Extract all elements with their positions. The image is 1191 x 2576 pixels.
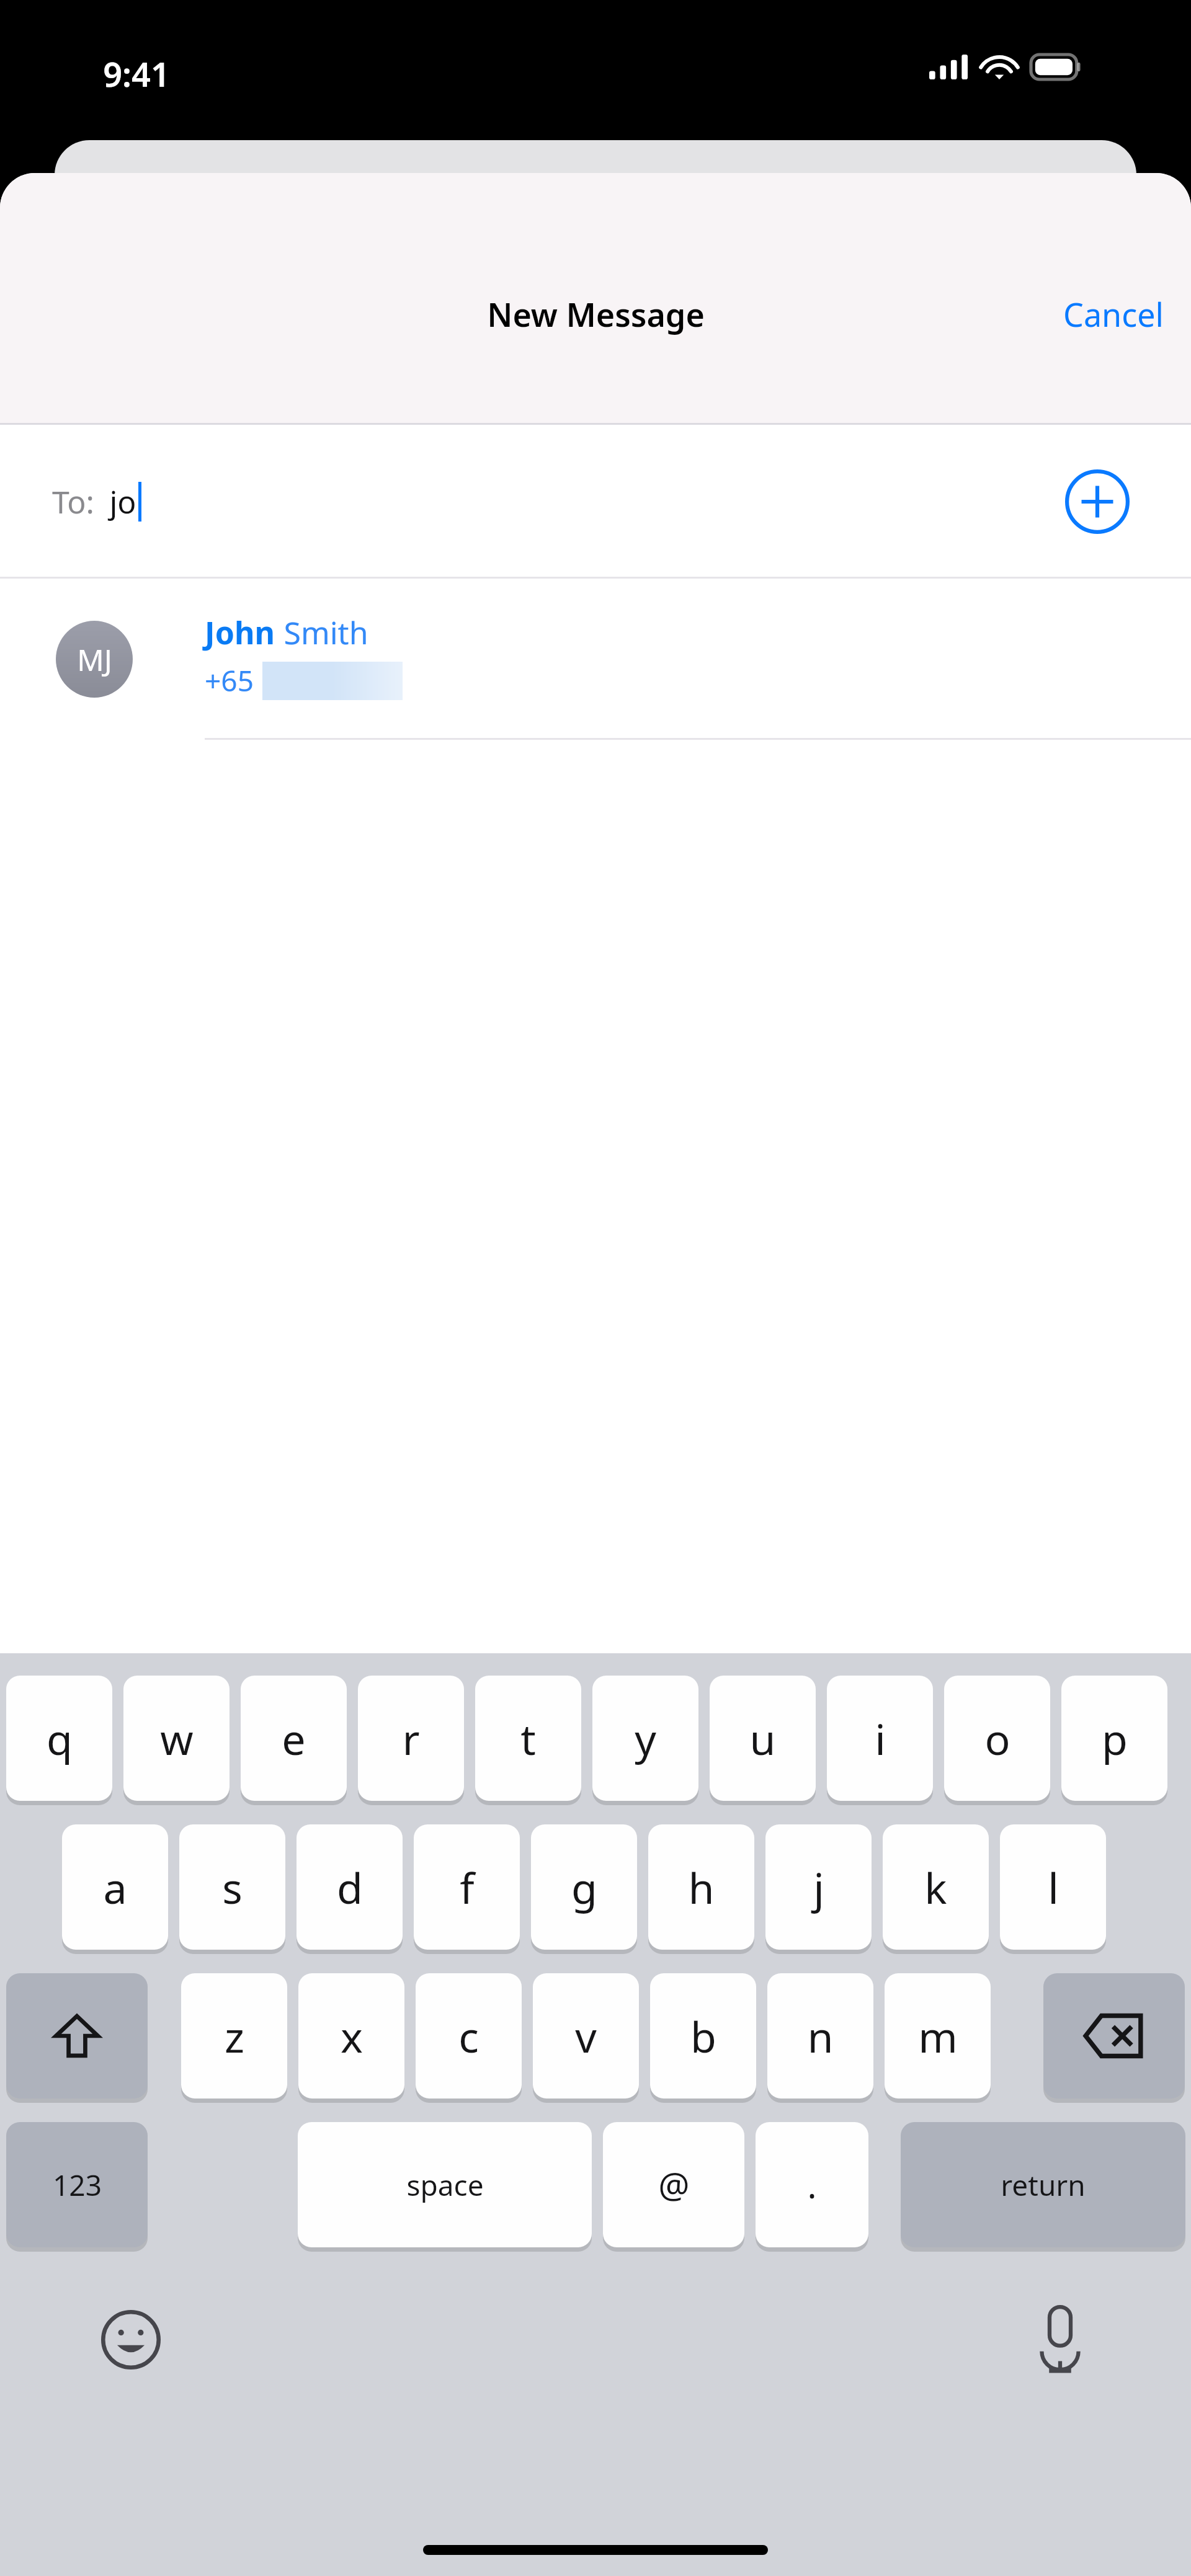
staticText: s xyxy=(222,1859,243,1916)
staticText: b xyxy=(690,2007,716,2065)
button[interactable]: t xyxy=(475,1676,581,1801)
staticText: New Message xyxy=(487,292,705,336)
staticText: o xyxy=(984,1710,1010,1767)
staticText: p xyxy=(1102,1710,1128,1767)
staticText: jo xyxy=(109,481,136,523)
button[interactable]: s xyxy=(179,1824,285,1950)
button[interactable]: h xyxy=(648,1824,754,1950)
button[interactable]: u xyxy=(710,1676,816,1801)
staticText: . xyxy=(807,2161,817,2208)
staticText: y xyxy=(635,1710,656,1767)
button[interactable]: MJ xyxy=(0,579,1191,740)
button[interactable]: Cancel xyxy=(1036,275,1191,353)
button[interactable]: o xyxy=(944,1676,1050,1801)
staticText: u xyxy=(749,1710,776,1767)
staticText: space xyxy=(406,2165,484,2205)
staticText: return xyxy=(1001,2165,1086,2205)
button[interactable]: p xyxy=(1061,1676,1167,1801)
button[interactable]: j xyxy=(765,1824,872,1950)
staticText: h xyxy=(688,1859,715,1916)
button[interactable]: v xyxy=(533,1973,639,2099)
staticText: Smith xyxy=(283,611,368,654)
staticText: d xyxy=(337,1859,363,1916)
button[interactable]: c xyxy=(416,1973,522,2099)
button[interactable]: space xyxy=(298,2122,592,2247)
button[interactable]: i xyxy=(827,1676,933,1801)
staticText: c xyxy=(458,2007,479,2065)
staticText: t xyxy=(520,1710,536,1767)
staticText: x xyxy=(341,2007,363,2065)
staticText: MJ xyxy=(77,639,112,680)
staticText: l xyxy=(1048,1859,1059,1916)
staticText: g xyxy=(571,1859,597,1916)
button[interactable]: Emoji keyboard xyxy=(91,2299,171,2380)
button[interactable]: b xyxy=(650,1973,756,2099)
button[interactable]: d xyxy=(297,1824,403,1950)
button[interactable]: z xyxy=(181,1973,287,2099)
button[interactable]: Backspace xyxy=(1043,1973,1185,2099)
staticText: m xyxy=(918,2007,958,2065)
button[interactable]: f xyxy=(414,1824,520,1950)
staticText: @ xyxy=(658,2161,690,2208)
button[interactable]: e xyxy=(241,1676,347,1801)
staticText: r xyxy=(402,1710,420,1767)
staticText: w xyxy=(160,1710,194,1767)
staticText: +65 xyxy=(205,661,254,700)
button[interactable]: a xyxy=(62,1824,168,1950)
button[interactable]: x xyxy=(298,1973,404,2099)
button[interactable]: m xyxy=(885,1973,991,2099)
staticText: k xyxy=(924,1859,947,1916)
button[interactable]: To: xyxy=(0,425,1191,579)
staticText: a xyxy=(103,1859,127,1916)
staticText: q xyxy=(47,1710,73,1767)
staticText: j xyxy=(813,1859,824,1916)
staticText: f xyxy=(460,1859,475,1916)
staticText: i xyxy=(875,1710,886,1767)
button[interactable]: l xyxy=(1000,1824,1106,1950)
button[interactable]: n xyxy=(767,1973,873,2099)
button[interactable]: Dictation xyxy=(1020,2299,1100,2380)
staticText: z xyxy=(225,2007,244,2065)
staticText: 9:41 xyxy=(103,51,170,97)
button[interactable]: r xyxy=(358,1676,464,1801)
button[interactable]: 123 xyxy=(6,2122,148,2247)
button[interactable]: w xyxy=(123,1676,230,1801)
button[interactable]: Shift xyxy=(6,1973,148,2099)
staticText: John xyxy=(205,611,275,654)
button[interactable]: @ xyxy=(603,2122,744,2247)
button[interactable]: Add contact xyxy=(1061,465,1134,538)
staticText: Cancel xyxy=(1063,292,1164,336)
staticText: e xyxy=(282,1710,306,1767)
button[interactable]: y xyxy=(592,1676,698,1801)
button[interactable]: q xyxy=(6,1676,112,1801)
button[interactable]: return xyxy=(901,2122,1185,2247)
staticText: n xyxy=(807,2007,834,2065)
button[interactable]: . xyxy=(756,2122,868,2247)
staticText: To: xyxy=(52,481,94,523)
button[interactable]: g xyxy=(531,1824,637,1950)
staticText: v xyxy=(575,2007,597,2065)
staticText: 123 xyxy=(53,2165,102,2205)
button[interactable]: k xyxy=(883,1824,989,1950)
